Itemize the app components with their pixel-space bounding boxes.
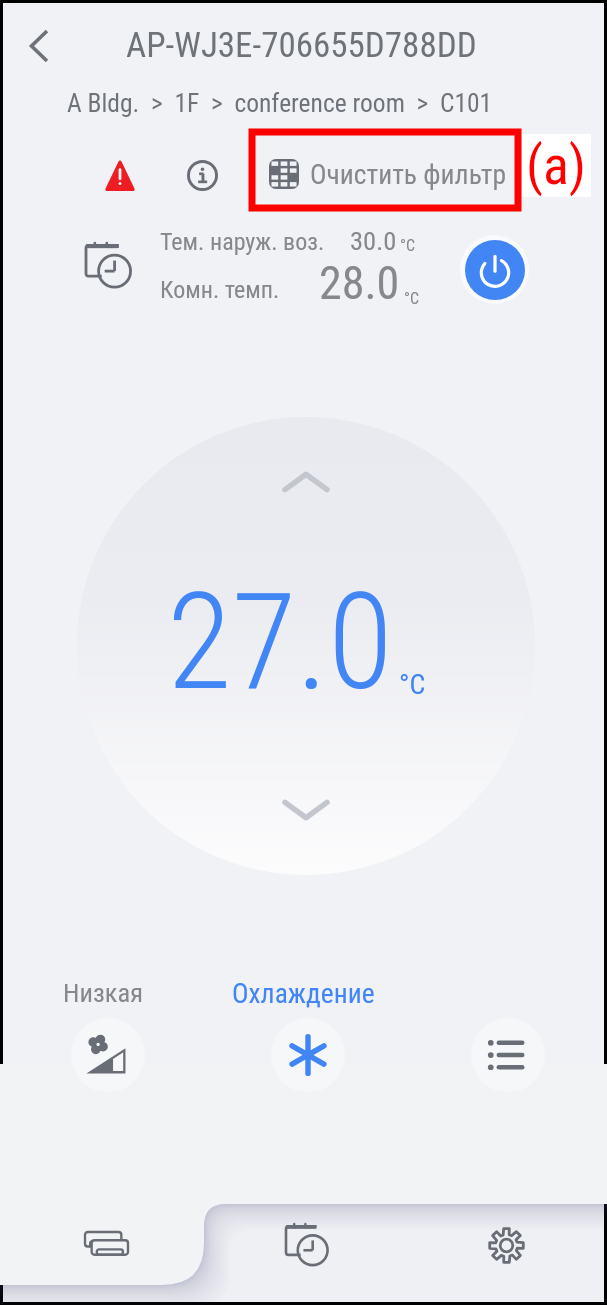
button[interactable]: Fan speed <box>71 1018 145 1092</box>
staticText: 28.0 <box>319 256 400 310</box>
button[interactable]: Schedule <box>271 1209 343 1281</box>
button[interactable]: Alert <box>104 159 136 191</box>
staticText: °C <box>400 236 416 255</box>
staticText: 27.0 <box>167 565 393 721</box>
button[interactable]: Settings <box>470 1209 542 1281</box>
button[interactable]: Options <box>471 1018 545 1092</box>
staticText: Тем. наруж. воз. <box>160 228 325 256</box>
staticText: Очистить фильтр <box>310 158 507 190</box>
staticText: (a) <box>526 134 587 197</box>
button[interactable]: Device <box>70 1210 142 1282</box>
button[interactable]: Очистить фильтр <box>269 149 507 199</box>
staticText: AP-WJ3E-706655D788DD <box>126 25 477 66</box>
button[interactable]: Power <box>465 240 525 300</box>
button[interactable]: Increase temperature <box>271 449 341 519</box>
staticText: A Bldg. > 1F > conference room > C101 <box>67 88 493 118</box>
staticText: °C <box>404 289 420 308</box>
button[interactable]: Decrease temperature <box>271 773 341 843</box>
staticText: Охлаждение <box>232 977 375 1009</box>
button[interactable]: Cooling mode <box>271 1018 345 1092</box>
staticText: Низкая <box>63 977 143 1008</box>
staticText: Комн. темп. <box>160 276 280 304</box>
button[interactable]: Back <box>15 22 63 70</box>
staticText: °C <box>399 668 426 701</box>
button[interactable]: Information <box>187 160 218 191</box>
staticText: 30.0 <box>350 225 397 256</box>
